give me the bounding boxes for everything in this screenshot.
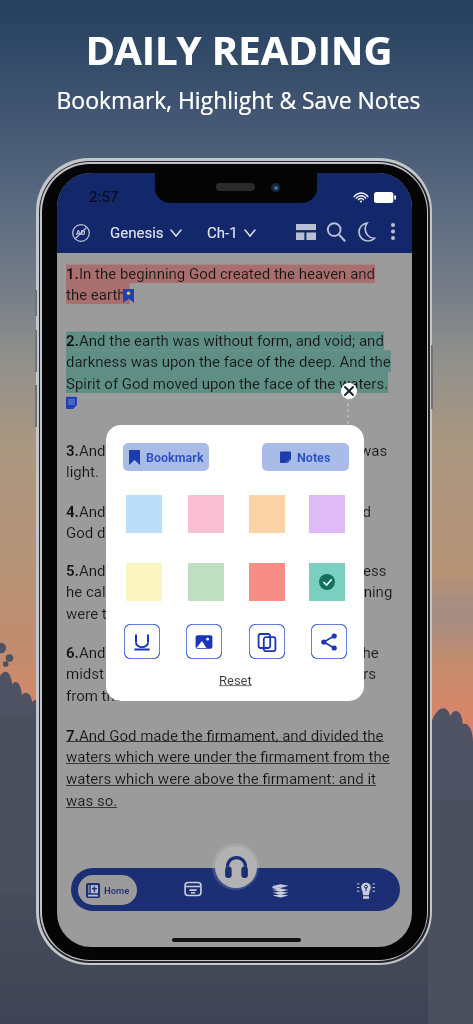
button[interactable]: 2.And the earth was without form, and vo… <box>66 332 397 393</box>
button[interactable]: 4.And God saw the light, that it was goo… <box>66 503 397 542</box>
button[interactable]: 1.In the beginning God created the heave… <box>66 265 397 304</box>
button[interactable]: Bookmark <box>123 443 209 471</box>
button[interactable]: Close <box>341 383 357 399</box>
button[interactable]: 3.And God said, Let there be light: and … <box>66 442 397 481</box>
button[interactable]: Note <box>66 396 77 409</box>
button[interactable]: Cards <box>179 875 207 903</box>
button[interactable]: Home <box>78 875 137 905</box>
other: Share <box>319 632 339 652</box>
staticText: Notes <box>297 450 331 465</box>
button[interactable]: Library <box>266 875 294 903</box>
button[interactable]: Genesis <box>107 218 184 247</box>
button[interactable]: 5.And God called the light Day, and the … <box>66 562 397 623</box>
other: Underline <box>132 632 152 652</box>
staticText: DAILY READING <box>85 22 393 76</box>
staticText: Bookmark, Highlight & Save Notes <box>56 85 421 116</box>
staticText: 2:57 <box>89 188 119 206</box>
staticText: Reset <box>219 673 252 688</box>
button[interactable]: Reset <box>216 670 255 691</box>
button[interactable]: 6.And God said, Let there be a firmament… <box>66 644 397 705</box>
button[interactable]: Copy <box>249 624 285 659</box>
button[interactable] <box>309 563 345 601</box>
button[interactable]: Audio <box>215 846 257 888</box>
staticText: AD <box>76 229 86 237</box>
button[interactable]: Search <box>323 219 349 245</box>
button[interactable]: Underline <box>124 624 160 659</box>
staticText: Home <box>104 885 130 896</box>
button[interactable]: 7.And God made the firmament, and divide… <box>66 727 397 810</box>
button[interactable]: Dark mode <box>355 219 381 245</box>
button[interactable]: Remove ads <box>67 219 94 246</box>
button[interactable]: Ch-1 <box>204 218 258 247</box>
button[interactable]: More options <box>381 219 405 243</box>
staticText: Ch-1 <box>207 224 238 242</box>
other: Copy <box>257 632 277 652</box>
button[interactable]: Image <box>186 624 222 659</box>
button[interactable]: Ideas <box>352 875 380 903</box>
staticText: Bookmark <box>146 450 204 465</box>
staticText: Genesis <box>110 224 164 242</box>
button[interactable]: Layout <box>293 219 319 245</box>
other: Image <box>194 632 214 652</box>
button[interactable]: Notes <box>262 443 349 471</box>
button[interactable]: Bookmark <box>123 289 134 303</box>
button[interactable]: Share <box>311 624 347 659</box>
